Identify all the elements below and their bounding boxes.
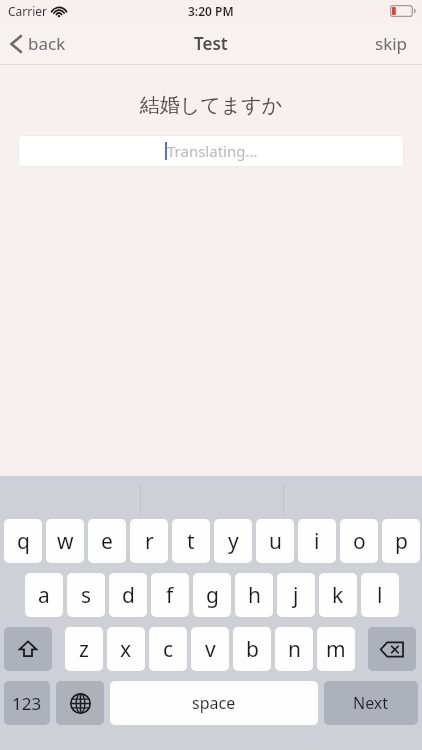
button[interactable]: p	[382, 519, 420, 563]
staticText: 結婚してますか	[0, 93, 422, 118]
staticText: h	[248, 581, 261, 610]
staticText: o	[353, 527, 366, 556]
button[interactable]: e	[88, 519, 126, 563]
staticText: g	[206, 581, 219, 610]
button[interactable]: t	[172, 519, 210, 563]
button[interactable]: Backspace	[368, 627, 416, 671]
button[interactable]: o	[340, 519, 378, 563]
staticText: c	[163, 635, 174, 664]
staticText: space	[192, 692, 236, 714]
staticText: v	[205, 635, 216, 664]
staticText: back	[28, 32, 66, 55]
staticText: r	[145, 527, 154, 556]
staticText: x	[120, 635, 132, 664]
staticText: Translating...	[167, 141, 258, 161]
staticText: n	[288, 635, 301, 664]
button[interactable]: Switch keyboard	[56, 681, 104, 725]
button[interactable]: n	[275, 627, 313, 671]
staticText: z	[79, 635, 89, 664]
button[interactable]: s	[67, 573, 105, 617]
staticText: Test	[194, 32, 228, 55]
button[interactable]: v	[191, 627, 229, 671]
staticText: k	[332, 581, 344, 610]
button[interactable]: Shift	[4, 627, 52, 671]
button[interactable]: m	[317, 627, 355, 671]
button[interactable]: b	[233, 627, 271, 671]
staticText: m	[326, 635, 346, 664]
button[interactable]: k	[319, 573, 357, 617]
button[interactable]: w	[46, 519, 84, 563]
staticText: l	[377, 581, 383, 610]
staticText: 3:20 PM	[188, 3, 234, 19]
button[interactable]: back	[0, 26, 78, 61]
button[interactable]: y	[214, 519, 252, 563]
button[interactable]: h	[235, 573, 273, 617]
button[interactable]: r	[130, 519, 168, 563]
staticText: e	[101, 527, 113, 556]
staticText: j	[293, 581, 299, 610]
staticText: Next	[353, 692, 389, 714]
button[interactable]: l	[361, 573, 399, 617]
button[interactable]: space	[110, 681, 318, 725]
button[interactable]: f	[151, 573, 189, 617]
staticText: p	[395, 527, 408, 556]
button[interactable]: 123	[4, 681, 50, 725]
button[interactable]: g	[193, 573, 231, 617]
button[interactable]: x	[107, 627, 145, 671]
button[interactable]: c	[149, 627, 187, 671]
staticText: b	[246, 635, 259, 664]
staticText: f	[166, 581, 174, 610]
staticText: i	[314, 527, 320, 556]
staticText: u	[269, 527, 282, 556]
button[interactable]: u	[256, 519, 294, 563]
staticText: s	[81, 581, 92, 610]
staticText: 123	[12, 692, 42, 715]
staticText: y	[228, 527, 239, 556]
button[interactable]: a	[25, 573, 63, 617]
button[interactable]: j	[277, 573, 315, 617]
button[interactable]: q	[4, 519, 42, 563]
staticText: a	[38, 581, 50, 610]
staticText: t	[187, 527, 195, 556]
button[interactable]: z	[65, 627, 103, 671]
staticText: Carrier	[8, 3, 48, 19]
staticText: skip	[375, 32, 408, 55]
button[interactable]: i	[298, 519, 336, 563]
button[interactable]: Next	[324, 681, 418, 725]
staticText: q	[17, 527, 30, 556]
staticText: w	[57, 527, 74, 556]
button[interactable]: d	[109, 573, 147, 617]
button[interactable]: Translating...	[18, 135, 404, 167]
button[interactable]: skip	[361, 26, 422, 61]
staticText: d	[122, 581, 135, 610]
